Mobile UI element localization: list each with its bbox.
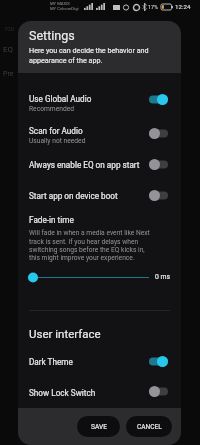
staticText: 17% xyxy=(148,4,159,10)
staticText: Dark Theme xyxy=(29,357,73,367)
staticText: Start app on device boot xyxy=(29,191,118,201)
button[interactable] xyxy=(18,151,181,177)
staticText: 12:24 xyxy=(175,3,191,10)
staticText: Settings xyxy=(29,28,75,43)
staticText: Scan for Audio xyxy=(29,126,83,136)
staticText: Recommended xyxy=(29,105,75,113)
staticText: Show Lock Switch xyxy=(29,388,96,398)
button[interactable] xyxy=(18,348,181,374)
button[interactable] xyxy=(18,378,181,404)
button[interactable] xyxy=(18,120,181,146)
staticText: Always enable EQ on app start xyxy=(29,160,140,170)
staticText: 0 ms xyxy=(155,273,170,281)
staticText: Pre xyxy=(3,70,14,78)
button[interactable]: CANCEL xyxy=(126,416,172,437)
staticText: MY MAXIS xyxy=(50,1,70,6)
staticText: Use Global Audio xyxy=(29,94,92,104)
staticText: User interface xyxy=(29,327,101,340)
button[interactable] xyxy=(18,86,181,112)
staticText: MY CelcomDigi xyxy=(50,6,79,11)
button[interactable] xyxy=(28,270,154,285)
staticText: SAVE xyxy=(91,423,107,431)
staticText: EQ xyxy=(3,45,14,54)
staticText: Here you can decide the behavior and app… xyxy=(29,46,168,64)
button[interactable] xyxy=(18,182,181,208)
staticText: 700 xyxy=(4,25,15,32)
staticText: CANCEL xyxy=(137,423,162,431)
staticText: Usually not needed xyxy=(29,137,86,145)
staticText: Will fade in when a media event like Nex… xyxy=(29,229,154,261)
staticText: Fade-in time xyxy=(29,215,74,225)
button[interactable]: SAVE xyxy=(77,416,120,437)
